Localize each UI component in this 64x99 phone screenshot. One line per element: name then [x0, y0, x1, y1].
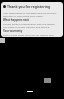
- staticText: you need to access support and service.: [3, 25, 50, 28]
- staticText: Thank you for registering: [7, 4, 51, 9]
- staticText: Your warranty: [3, 29, 23, 33]
- staticText: Cover starts today and runs for twenty f…: [3, 33, 54, 36]
- staticText: Your registration is complete and the pr…: [3, 11, 57, 14]
- staticText: What happens next: [3, 18, 29, 22]
- button[interactable]: Thank you for registering: [1, 2, 63, 37]
- staticText: warranty is now active from today.: [3, 14, 44, 17]
- staticText: We will email a confirmation with the de…: [3, 22, 55, 25]
- staticText: months from the date of purchase.: [3, 36, 44, 37]
